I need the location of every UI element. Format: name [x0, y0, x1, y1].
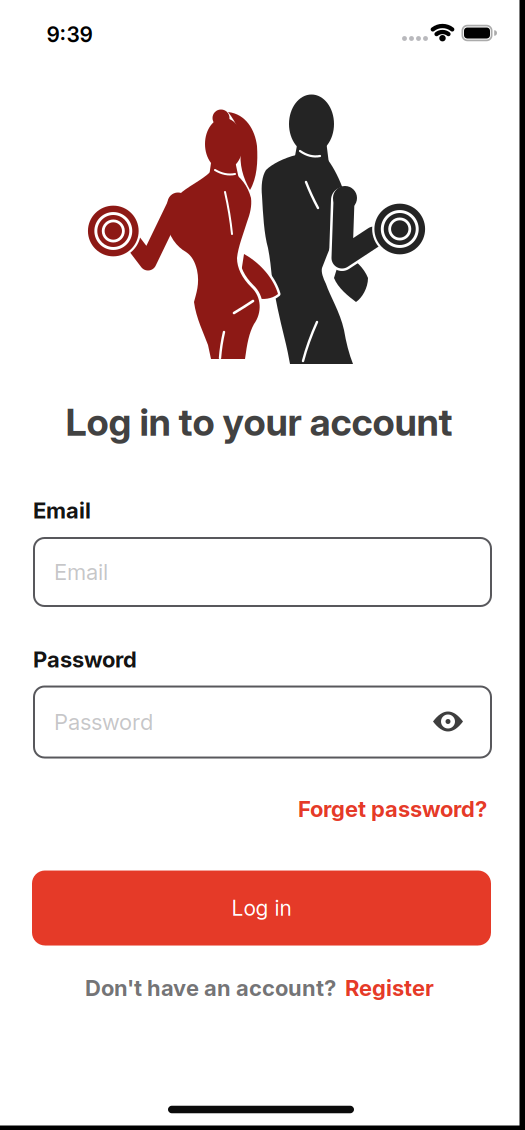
staticText: Password [54, 709, 153, 735]
button[interactable]: Email [33, 537, 492, 607]
staticText: Password [33, 646, 137, 673]
staticText: Log in [231, 895, 291, 921]
button[interactable]: Register [345, 975, 434, 1001]
staticText: Register [345, 975, 434, 1001]
staticText: Forget password? [298, 796, 487, 822]
button[interactable]: Forget password? [298, 796, 487, 822]
button[interactable]: Show password [432, 710, 464, 732]
staticText: Don't have an account? [85, 975, 336, 1001]
button[interactable]: Password [33, 685, 492, 758]
staticText: Log in to your account [65, 399, 452, 445]
button[interactable]: Log in [32, 870, 491, 945]
staticText: 9:39 [46, 22, 92, 47]
staticText: Email [33, 497, 91, 524]
staticText: Email [54, 559, 108, 585]
